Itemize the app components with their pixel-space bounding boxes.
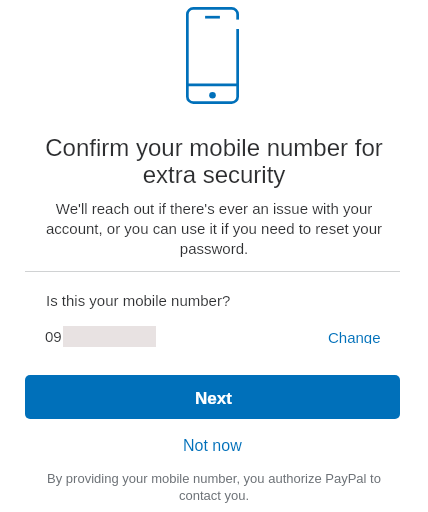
staticText: By providing your mobile number, you aut… bbox=[44, 471, 384, 502]
staticText: Next bbox=[195, 389, 232, 408]
button[interactable]: Not now bbox=[175, 432, 254, 460]
staticText: Is this your mobile number? bbox=[46, 292, 231, 309]
staticText: Confirm your mobile number for extra sec… bbox=[42, 134, 386, 189]
staticText: 09 bbox=[45, 328, 62, 345]
staticText: Change bbox=[328, 329, 381, 344]
button[interactable]: Change bbox=[328, 326, 381, 347]
button[interactable]: Next bbox=[25, 375, 400, 419]
staticText: Not now bbox=[183, 437, 242, 455]
staticText: We'll reach out if there's ever an issue… bbox=[44, 200, 384, 257]
